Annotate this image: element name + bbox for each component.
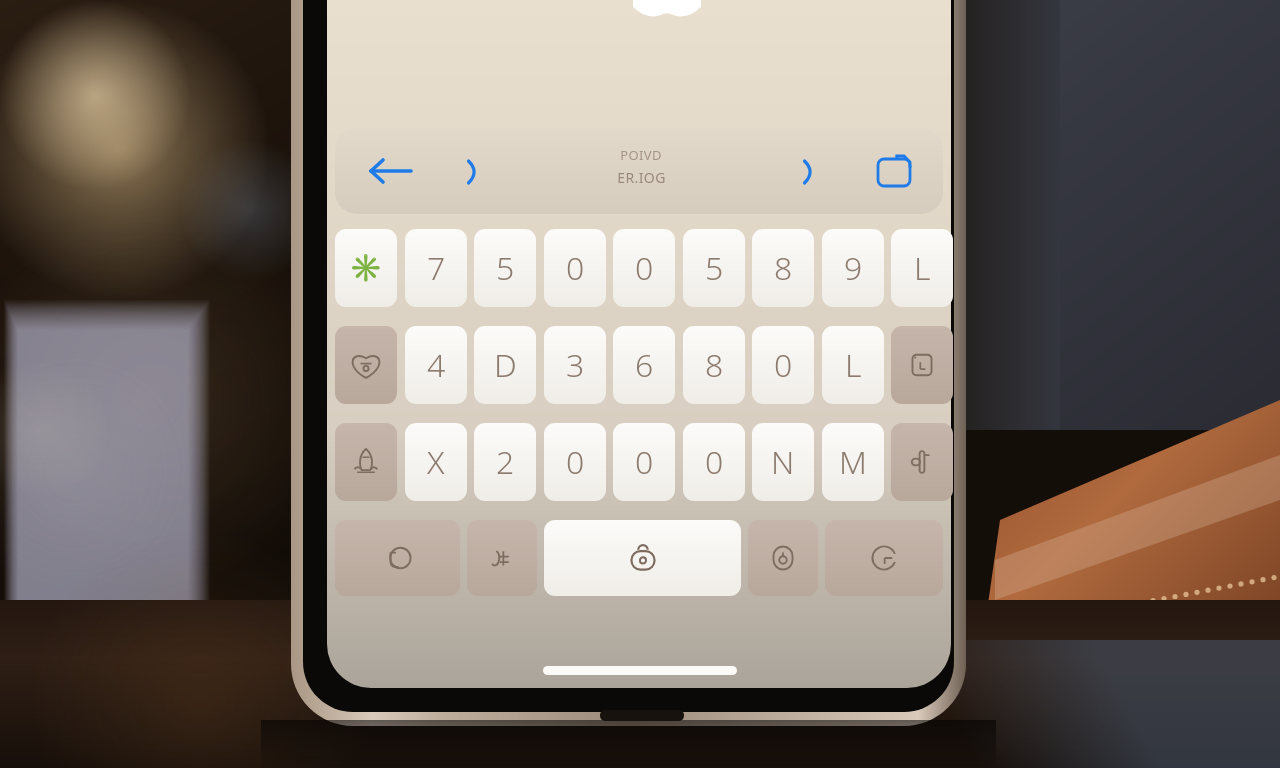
staticText: 2 bbox=[496, 440, 515, 484]
button[interactable]: Space bbox=[544, 520, 741, 596]
staticText: L bbox=[914, 246, 931, 290]
button[interactable]: 5 bbox=[683, 229, 745, 307]
staticText: 9 bbox=[844, 246, 863, 290]
button[interactable]: Marker bbox=[457, 154, 487, 190]
button[interactable]: ✳ bbox=[335, 229, 397, 307]
button[interactable]: Symbols bbox=[335, 423, 397, 501]
staticText: POIVD bbox=[620, 146, 662, 164]
staticText: 0 bbox=[566, 246, 585, 290]
button[interactable]: N bbox=[752, 423, 814, 501]
staticText: X bbox=[427, 440, 445, 484]
staticText: 5 bbox=[496, 246, 515, 290]
button[interactable]: Delete bbox=[891, 326, 953, 404]
button[interactable]: 5 bbox=[474, 229, 536, 307]
button[interactable]: 0 bbox=[544, 229, 606, 307]
staticText: 7 bbox=[427, 246, 446, 290]
staticText: 8 bbox=[705, 343, 724, 387]
button[interactable]: Marker bbox=[793, 154, 823, 190]
button[interactable]: 8 bbox=[683, 326, 745, 404]
button[interactable]: L bbox=[891, 229, 953, 307]
button[interactable]: Search bbox=[825, 520, 943, 596]
staticText: N bbox=[771, 440, 795, 484]
button[interactable]: Back bbox=[353, 148, 427, 194]
button[interactable]: D bbox=[474, 326, 536, 404]
staticText: 0 bbox=[566, 440, 585, 484]
staticText: 0 bbox=[635, 246, 654, 290]
staticText: 5 bbox=[705, 246, 724, 290]
button[interactable]: 6 bbox=[613, 326, 675, 404]
button[interactable]: Copy to folder bbox=[867, 146, 921, 196]
button[interactable]: 3 bbox=[544, 326, 606, 404]
button[interactable]: 2 bbox=[474, 423, 536, 501]
button[interactable]: L bbox=[822, 326, 884, 404]
button[interactable]: 0 bbox=[544, 423, 606, 501]
button[interactable]: 0 bbox=[752, 326, 814, 404]
staticText: ER.IOG bbox=[617, 168, 666, 187]
staticText: 4 bbox=[427, 343, 446, 387]
button[interactable]: Language bbox=[467, 520, 537, 596]
button[interactable]: 0 bbox=[683, 423, 745, 501]
staticText: 0 bbox=[635, 440, 654, 484]
staticText: M bbox=[839, 440, 867, 484]
staticText: ✳ bbox=[349, 252, 383, 284]
staticText: 6 bbox=[635, 343, 654, 387]
staticText: L bbox=[845, 343, 862, 387]
button[interactable]: 7 bbox=[405, 229, 467, 307]
button[interactable]: 9 bbox=[822, 229, 884, 307]
button[interactable]: Return bbox=[891, 423, 953, 501]
button[interactable]: Emoji bbox=[335, 520, 460, 596]
button[interactable]: 4 bbox=[405, 326, 467, 404]
button[interactable]: Mic bbox=[748, 520, 818, 596]
staticText: 0 bbox=[705, 440, 724, 484]
button[interactable]: 0 bbox=[613, 229, 675, 307]
staticText: 8 bbox=[774, 246, 793, 290]
button[interactable]: X bbox=[405, 423, 467, 501]
button[interactable]: 8 bbox=[752, 229, 814, 307]
staticText: 0 bbox=[774, 343, 793, 387]
button[interactable]: M bbox=[822, 423, 884, 501]
staticText: 3 bbox=[566, 343, 585, 387]
button[interactable]: Shift bbox=[335, 326, 397, 404]
staticText: D bbox=[494, 343, 517, 387]
button[interactable]: 0 bbox=[613, 423, 675, 501]
